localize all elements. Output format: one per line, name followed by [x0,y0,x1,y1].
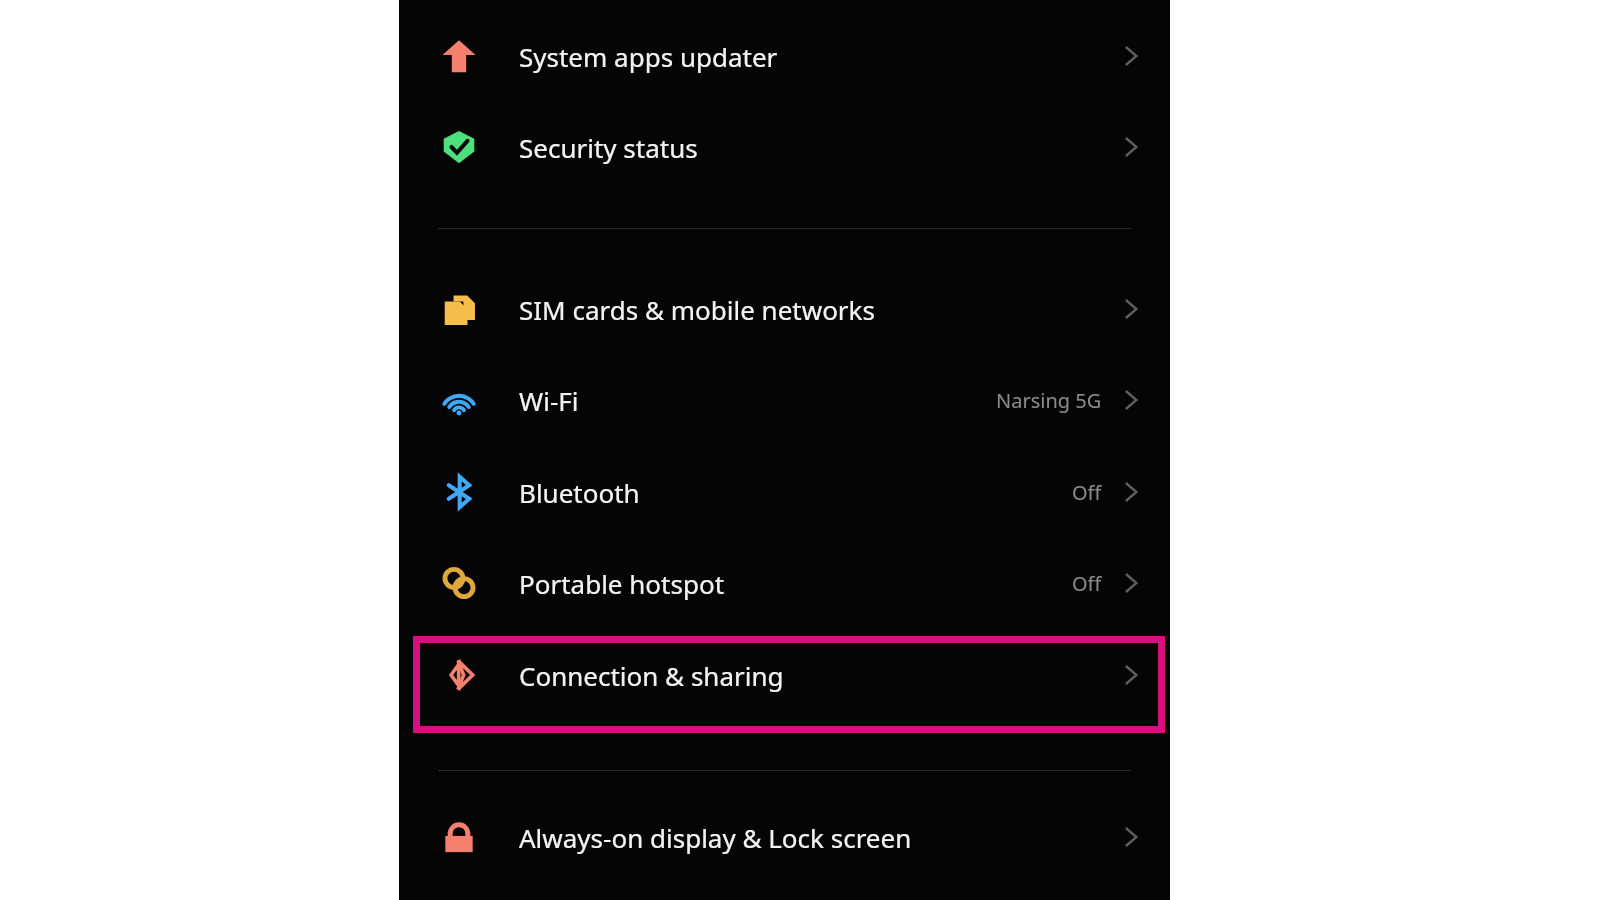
button[interactable]: Bluetooth [399,450,1170,534]
staticText: System apps updater [519,39,778,74]
button[interactable]: Security status [399,105,1170,189]
staticText: Connection & sharing [519,658,784,693]
other: Open Connection & sharing [1116,660,1146,690]
button[interactable]: Always-on display & Lock screen [399,795,1170,879]
staticText: Bluetooth [519,475,640,510]
button[interactable]: SIM cards & mobile networks [399,267,1170,351]
staticText: Always-on display & Lock screen [519,820,912,855]
staticText: Security status [519,130,698,165]
other: Open Always-on display & Lock screen [1116,822,1146,852]
staticText: Off [1072,570,1102,597]
button[interactable]: Portable hotspot [399,541,1170,625]
button[interactable]: Wi-Fi [399,358,1170,442]
staticText: Portable hotspot [519,566,725,601]
other: Open Bluetooth [1116,477,1146,507]
other: Open SIM cards & mobile networks [1116,294,1146,324]
other: Open Security status [1116,132,1146,162]
other: Open Wi-Fi [1116,385,1146,415]
other: Open Portable hotspot [1116,568,1146,598]
button[interactable]: System apps updater [399,14,1170,98]
other: Open System apps updater [1116,41,1146,71]
staticText: Wi-Fi [519,383,579,418]
staticText: Narsing 5G [996,387,1102,414]
staticText: SIM cards & mobile networks [519,292,875,327]
button[interactable]: Connection & sharing [399,633,1170,717]
staticText: Off [1072,479,1102,506]
